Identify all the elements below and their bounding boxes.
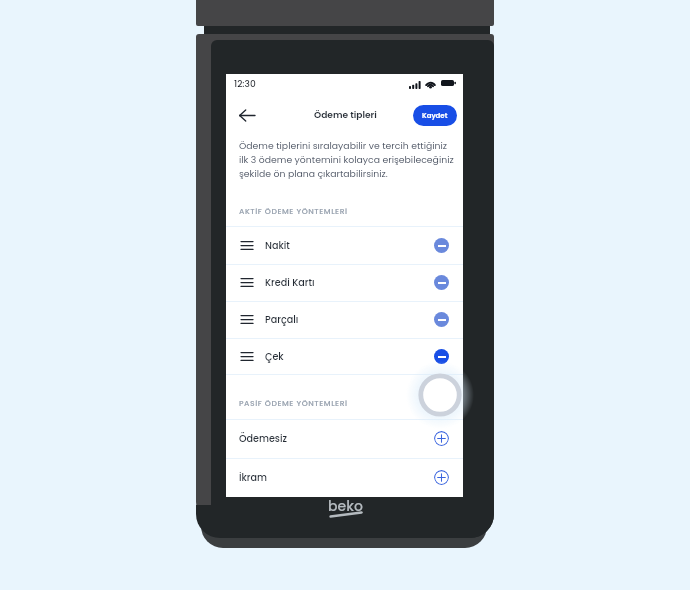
staticText: Kredi Kartı bbox=[265, 276, 315, 289]
staticText: İkram bbox=[239, 471, 268, 484]
button[interactable]: Parçalı bbox=[226, 301, 463, 338]
staticText: Nakit bbox=[265, 239, 290, 252]
staticText: Kaydet bbox=[422, 111, 448, 121]
button[interactable]: Remove Çek bbox=[434, 349, 449, 364]
button[interactable]: Back bbox=[232, 100, 262, 130]
button[interactable]: Add İkram bbox=[434, 470, 449, 485]
staticText: Ödemesiz bbox=[239, 432, 288, 445]
button[interactable]: Ödemesiz bbox=[226, 419, 463, 458]
staticText: Parçalı bbox=[265, 313, 299, 326]
button[interactable]: Remove Nakit bbox=[434, 238, 449, 253]
staticText: Ödeme tipleri bbox=[314, 108, 377, 121]
staticText: beko bbox=[328, 496, 363, 516]
button[interactable]: Add Ödemesiz bbox=[434, 431, 449, 446]
button[interactable]: Nakit bbox=[226, 226, 463, 264]
staticText: 12:30 bbox=[234, 78, 256, 91]
button[interactable]: Kredi Kartı bbox=[226, 264, 463, 301]
button[interactable]: Remove Kredi Kartı bbox=[434, 275, 449, 290]
staticText: Ödeme tiplerini sıralayabilir ve tercih … bbox=[239, 139, 454, 181]
staticText: Çek bbox=[265, 350, 284, 363]
button[interactable]: Çek bbox=[226, 338, 463, 375]
button[interactable]: İkram bbox=[226, 458, 463, 497]
button[interactable]: Remove Parçalı bbox=[434, 312, 449, 327]
staticText: PASİF ÖDEME YÖNTEMLERİ bbox=[239, 398, 348, 409]
button[interactable]: Kaydet bbox=[413, 105, 457, 126]
staticText: AKTİF ÖDEME YÖNTEMLERİ bbox=[239, 206, 348, 217]
